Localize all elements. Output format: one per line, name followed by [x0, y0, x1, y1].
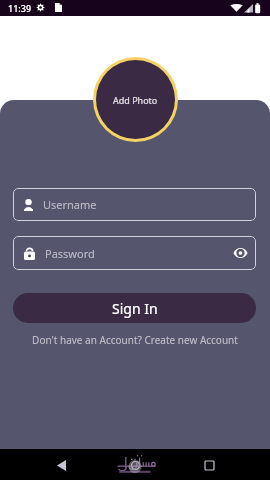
- button[interactable]: Sign In: [13, 293, 256, 323]
- staticText: Add Photo: [113, 94, 158, 106]
- button[interactable]: Username: [13, 188, 256, 221]
- button[interactable]: Add Photo: [93, 57, 178, 142]
- button[interactable]: Back: [48, 452, 74, 478]
- staticText: Sign In: [112, 299, 158, 318]
- staticText: Password: [45, 246, 95, 261]
- button[interactable]: Show password: [231, 244, 249, 262]
- staticText: 11:39: [8, 2, 32, 14]
- button[interactable]: Don't have an Account? Create new Accoun…: [0, 331, 270, 348]
- button[interactable]: Recents: [196, 452, 222, 478]
- staticText: Username: [43, 197, 97, 212]
- staticText: Don't have an Account? Create new Accoun…: [32, 333, 238, 347]
- button[interactable]: Password: [13, 236, 256, 270]
- button[interactable]: Home: [122, 452, 148, 478]
